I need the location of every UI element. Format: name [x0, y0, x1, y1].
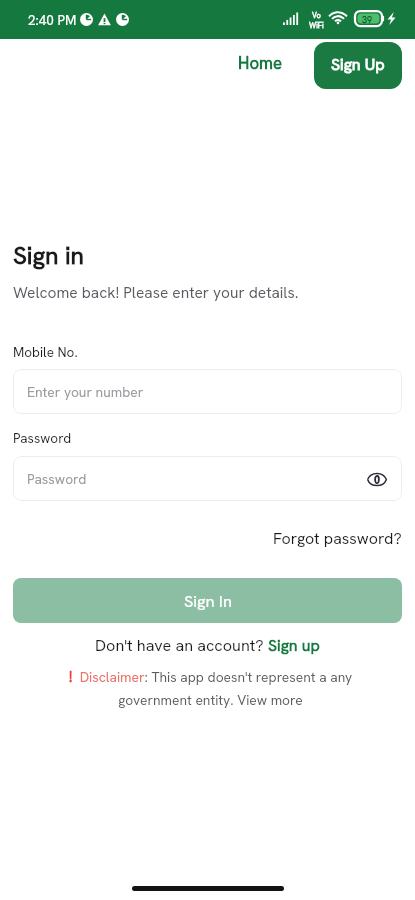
staticText: Password — [27, 470, 87, 488]
button[interactable]: Sign up — [268, 635, 320, 656]
button[interactable]: Sign Up — [314, 42, 402, 89]
staticText: Don't have an account? — [95, 635, 268, 656]
button[interactable]: Sign In — [13, 578, 402, 623]
staticText: Sign In — [184, 590, 232, 611]
staticText: Sign Up — [331, 54, 385, 75]
button[interactable]: Home — [238, 52, 283, 74]
staticText: Enter your number — [27, 383, 144, 401]
button[interactable]: Forgot password? — [273, 528, 402, 549]
staticText: WiFi — [309, 20, 324, 30]
staticText: Password — [13, 429, 72, 447]
staticText: Forgot password? — [273, 528, 402, 549]
staticText: 39 — [362, 14, 373, 26]
staticText: Sign in — [13, 239, 84, 271]
staticText: Home — [238, 52, 283, 74]
button[interactable]: Enter your number — [13, 369, 402, 414]
staticText: 2:40 PM — [28, 11, 77, 29]
staticText: Sign up — [268, 635, 320, 656]
button[interactable]: Password — [13, 456, 402, 501]
button[interactable]: Show password — [366, 468, 388, 490]
staticText: ! Disclaimer: This app doesn't represent… — [56, 666, 365, 709]
staticText: Mobile No. — [13, 343, 78, 361]
staticText: Vo — [312, 10, 321, 20]
staticText: Welcome back! Please enter your details. — [13, 282, 299, 302]
